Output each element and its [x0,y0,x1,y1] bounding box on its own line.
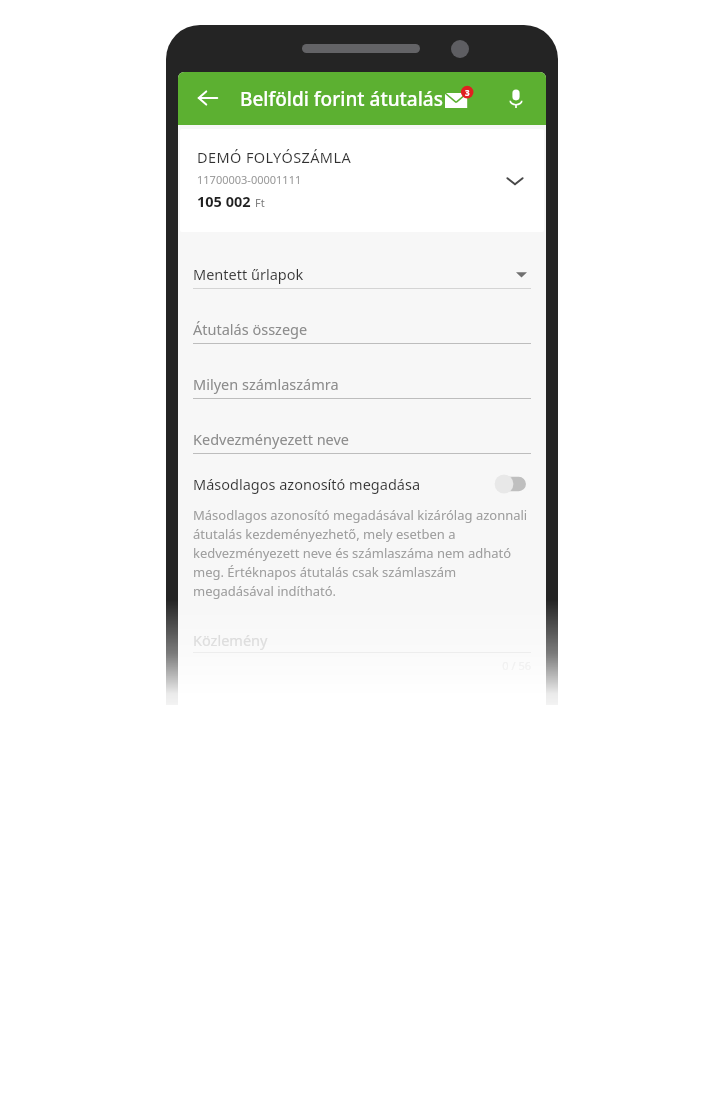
staticText: Kedvezményezett neve [193,429,350,449]
button[interactable]: DEMÓ FOLYÓSZÁMLA [180,129,544,232]
staticText: DEMÓ FOLYÓSZÁMLA [197,147,352,167]
staticText: Másodlagos azonosító megadásával kizáról… [193,506,531,600]
button[interactable]: Milyen számlaszámra [193,370,531,398]
button[interactable]: Mentett űrlapok [193,260,531,288]
staticText: 105 002 [197,191,251,211]
staticText: Ft [255,195,265,210]
staticText: Belföldi forint átutalás [240,86,443,112]
staticText: Mentett űrlapok [193,264,304,284]
staticText: Közlemény [193,630,268,650]
button[interactable]: Voice search [492,75,540,123]
button[interactable]: Másodlagos azonosító megadása [193,468,531,500]
staticText: Átutalás összege [193,319,308,339]
button[interactable]: Átutalás összege [193,315,531,343]
button[interactable]: Messages [436,75,484,123]
staticText: 11700003-00001111 [197,172,302,187]
button[interactable]: Back [182,72,234,124]
staticText: 3 [465,87,470,98]
staticText: Milyen számlaszámra [193,374,339,394]
staticText: Másodlagos azonosító megadása [193,474,497,494]
button[interactable]: Select account [492,158,538,204]
button[interactable]: Kedvezményezett neve [193,425,531,453]
